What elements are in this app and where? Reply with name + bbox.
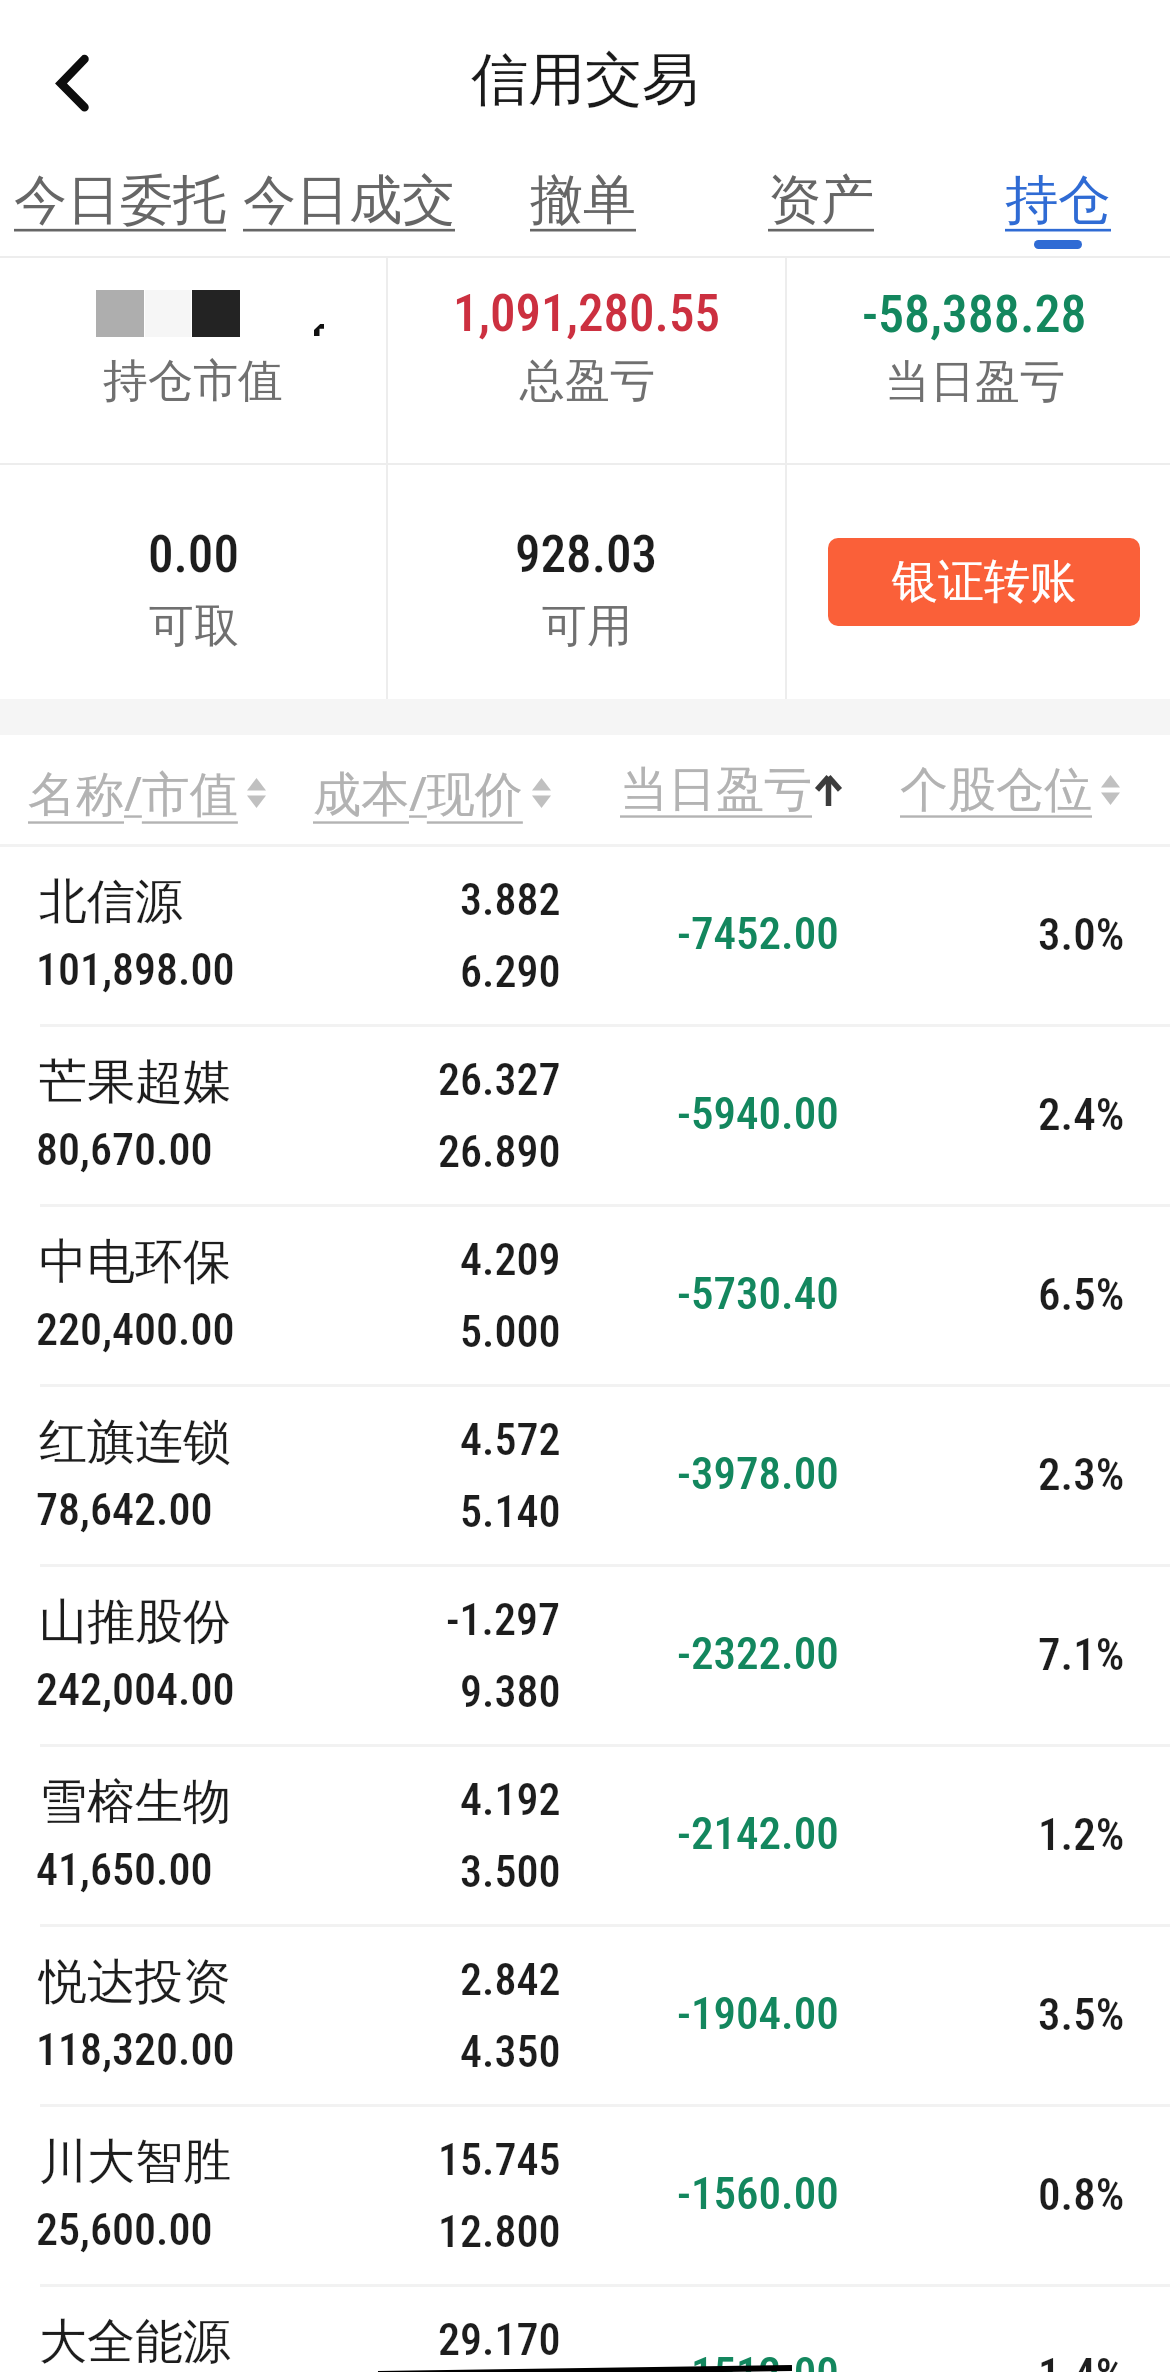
staticText: 芒果超媒 xyxy=(39,1052,231,1112)
button[interactable]: 名称/市值 xyxy=(28,760,266,826)
staticText: 撤单 xyxy=(530,167,636,234)
staticText: 1,091,280.55 xyxy=(453,284,721,344)
button[interactable]: 红旗连锁 xyxy=(0,1384,1170,1564)
button[interactable]: 个股仓位 xyxy=(900,760,1120,820)
staticText: 2.842 xyxy=(460,1954,561,2006)
staticText: 雪榕生物 xyxy=(39,1772,231,1832)
staticText: 1.2% xyxy=(1038,1808,1125,1861)
staticText: 5.140 xyxy=(460,1486,561,1538)
staticText: 0.8% xyxy=(1038,2168,1125,2221)
button[interactable]: 资产 xyxy=(768,167,874,234)
staticText: 中电环保 xyxy=(39,1232,231,1292)
staticText: 川大智胜 xyxy=(39,2132,231,2192)
staticText: 3.5% xyxy=(1038,1988,1125,2041)
staticText: -1904.00 xyxy=(677,1987,839,2040)
staticText: 4.350 xyxy=(460,2026,561,2078)
staticText: 78,642.00 xyxy=(36,1484,213,1536)
staticText: 4.572 xyxy=(460,1414,561,1466)
staticText: 41,650.00 xyxy=(36,1844,213,1896)
staticText: 成本/现价 xyxy=(313,760,523,826)
button[interactable]: Back xyxy=(27,36,123,132)
staticText: 悦达投资 xyxy=(39,1952,231,2012)
staticText: 928.03 xyxy=(515,525,658,585)
button[interactable]: 北信源 xyxy=(0,844,1170,1024)
button[interactable]: 大全能源 xyxy=(0,2284,1170,2372)
staticText: 当日盈亏 xyxy=(620,760,812,820)
staticText: 名称/市值 xyxy=(28,760,238,826)
staticText: 持仓市值 xyxy=(103,353,283,410)
staticText: 2.4% xyxy=(1038,1088,1125,1141)
button[interactable]: 雪榕生物 xyxy=(0,1744,1170,1924)
staticText: -1512.00 xyxy=(677,2347,839,2372)
staticText: 今日委托 xyxy=(14,167,226,234)
button[interactable]: 中电环保 xyxy=(0,1204,1170,1384)
staticText: 可取 xyxy=(149,598,239,655)
staticText: 3.500 xyxy=(460,1846,561,1898)
staticText: 持仓 xyxy=(1005,167,1111,234)
staticText: 3.0% xyxy=(1038,908,1125,961)
staticText: 29.170 xyxy=(438,2314,561,2366)
button[interactable]: 山推股份 xyxy=(0,1564,1170,1744)
button[interactable]: 今日成交 xyxy=(243,167,455,234)
button[interactable]: 持仓 xyxy=(1005,167,1111,249)
staticText: 总盈亏 xyxy=(520,353,655,410)
staticText: 银证转账 xyxy=(892,553,1076,611)
staticText: 当日盈亏 xyxy=(885,354,1065,411)
staticText: 大全能源 xyxy=(39,2312,231,2372)
staticText: -3978.00 xyxy=(677,1447,839,1500)
staticText: 6.290 xyxy=(460,946,561,998)
button[interactable]: 撤单 xyxy=(530,167,636,234)
staticText: 25,600.00 xyxy=(36,2204,213,2256)
button[interactable]: 悦达投资 xyxy=(0,1924,1170,2104)
staticText: -5730.40 xyxy=(677,1267,839,1320)
staticText: -7452.00 xyxy=(677,907,839,960)
button[interactable]: 芒果超媒 xyxy=(0,1024,1170,1204)
staticText: 80,670.00 xyxy=(36,1124,213,1176)
staticText: 26.327 xyxy=(438,1054,561,1106)
staticText: -2142.00 xyxy=(677,1807,839,1860)
staticText: 7.1% xyxy=(1038,1628,1125,1681)
staticText: 0.00 xyxy=(148,525,239,585)
staticText: -58,388.28 xyxy=(862,284,1087,345)
staticText: 9.380 xyxy=(460,1666,561,1718)
staticText: 今日成交 xyxy=(243,167,455,234)
staticText: 个股仓位 xyxy=(900,760,1092,820)
staticText: -1560.00 xyxy=(677,2167,839,2220)
staticText: 118,320.00 xyxy=(36,2024,235,2076)
staticText: 6.5% xyxy=(1038,1268,1125,1321)
staticText: 北信源 xyxy=(39,872,183,932)
staticText: -1.297 xyxy=(446,1594,561,1646)
staticText: 信用交易 xyxy=(471,44,699,116)
staticText: 4.209 xyxy=(460,1234,561,1286)
staticText: 220,400.00 xyxy=(36,1304,235,1356)
button[interactable]: 今日委托 xyxy=(14,167,226,234)
button[interactable]: Toggle balance visibility xyxy=(288,298,352,362)
button[interactable]: 成本/现价 xyxy=(313,760,551,826)
staticText: 红旗连锁 xyxy=(39,1412,231,1472)
staticText: -5940.00 xyxy=(677,1087,839,1140)
staticText: 可用 xyxy=(542,598,632,655)
button[interactable]: 川大智胜 xyxy=(0,2104,1170,2284)
staticText: 12.800 xyxy=(438,2206,561,2258)
staticText: 1.4% xyxy=(1038,2348,1125,2372)
staticText: 26.890 xyxy=(438,1126,561,1178)
staticText: 101,898.00 xyxy=(36,944,235,996)
staticText: 山推股份 xyxy=(39,1592,231,1652)
staticText: 2.3% xyxy=(1038,1448,1125,1501)
staticText: 242,004.00 xyxy=(36,1664,235,1716)
staticText: -2322.00 xyxy=(677,1627,839,1680)
staticText: 5.000 xyxy=(460,1306,561,1358)
staticText: 资产 xyxy=(768,167,874,234)
staticText: 3.882 xyxy=(460,874,561,926)
staticText: 4.192 xyxy=(460,1774,561,1826)
staticText: 15.745 xyxy=(438,2134,561,2186)
button[interactable]: 当日盈亏 xyxy=(620,760,841,820)
button[interactable]: 银证转账 xyxy=(828,538,1140,626)
